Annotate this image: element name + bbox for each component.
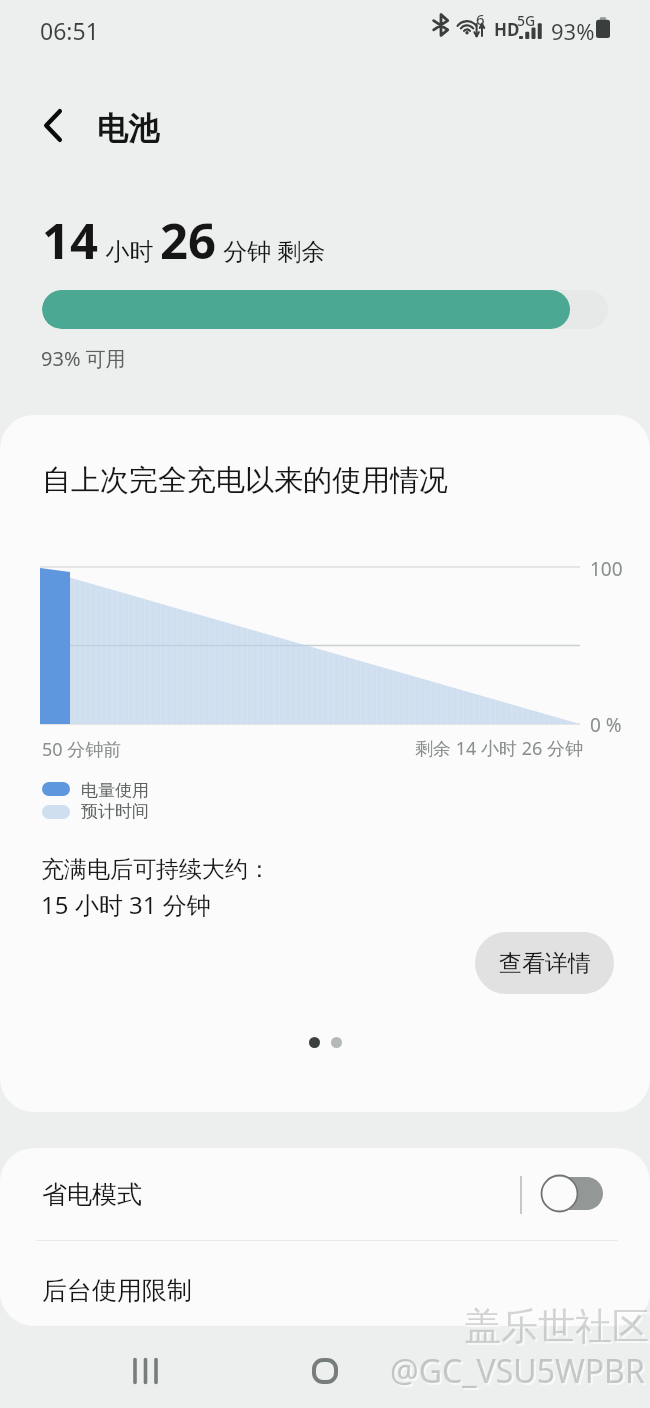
staticText: 06:51	[40, 15, 99, 46]
button[interactable]: Back	[29, 101, 77, 149]
staticText: 100	[590, 556, 623, 582]
staticText: 省电模式	[42, 1179, 142, 1210]
staticText: 电量使用	[81, 780, 149, 801]
staticText: 5G	[517, 11, 536, 30]
staticText: 充满电后可持续大约：	[41, 855, 271, 884]
staticText: 盖乐世社区	[466, 1305, 650, 1352]
staticText: 剩余 14 小时 26 分钟	[415, 736, 583, 761]
staticText: 6	[476, 9, 485, 29]
button[interactable]: 后台使用限制	[0, 1241, 650, 1326]
staticText: 小时	[99, 234, 160, 267]
staticText: 分钟 剩余	[217, 234, 326, 267]
staticText: 0 %	[590, 712, 622, 738]
staticText: HD	[494, 18, 520, 41]
staticText: 查看详情	[499, 949, 591, 978]
staticText: 93% 可用	[41, 345, 126, 372]
staticText: 26	[160, 207, 217, 274]
staticText: 14	[42, 207, 99, 274]
button[interactable]: Home	[294, 1340, 356, 1402]
button[interactable]: 查看详情	[475, 932, 614, 994]
staticText: 自上次完全充电以来的使用情况	[42, 462, 448, 499]
staticText: 后台使用限制	[42, 1275, 192, 1306]
button[interactable]: Recent apps	[114, 1340, 176, 1402]
staticText: 预计时间	[81, 801, 149, 822]
staticText: 盖乐世社区	[464, 1303, 649, 1350]
staticText: 93%	[551, 16, 595, 46]
staticText: 50 分钟前	[42, 737, 122, 762]
button[interactable]: Power saving mode toggle	[539, 1173, 605, 1214]
button[interactable]: 省电模式	[0, 1148, 650, 1241]
staticText: 电池	[97, 109, 159, 148]
staticText: @GC_VSU5WPBR	[390, 1349, 645, 1393]
staticText: 15 小时 31 分钟	[41, 888, 211, 921]
staticText: @GC_VSU5WPBR	[392, 1351, 647, 1395]
